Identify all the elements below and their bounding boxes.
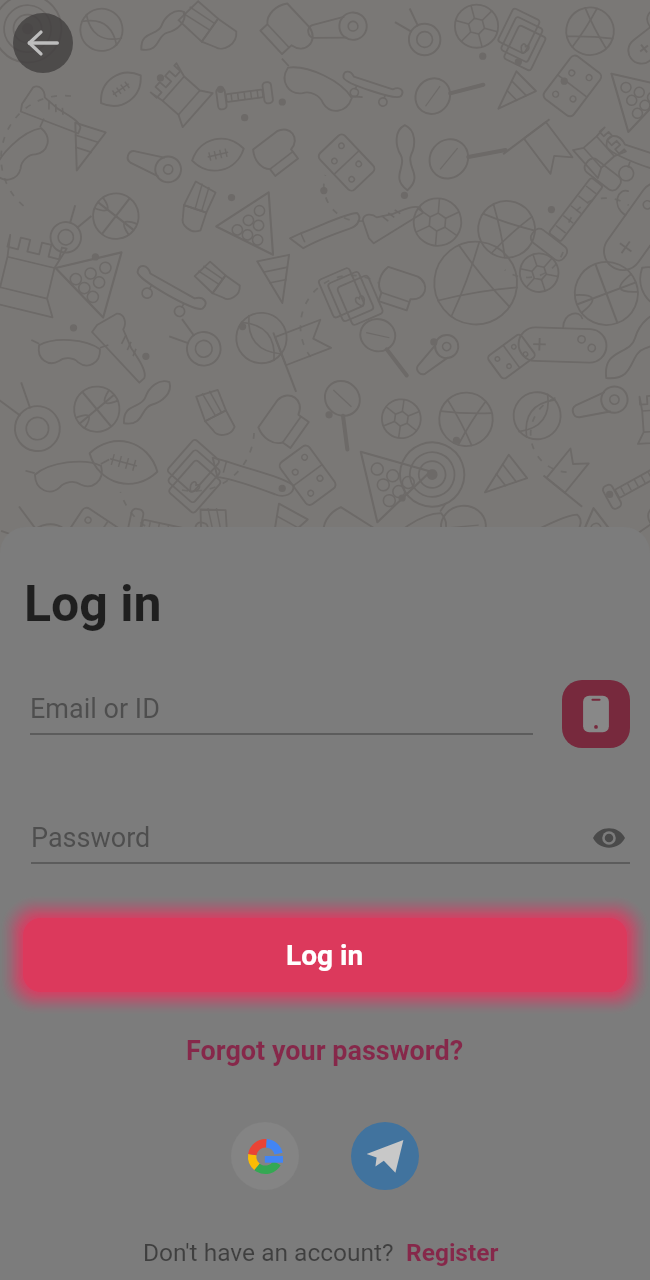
- button[interactable]: Forgot your password?: [176, 1029, 474, 1073]
- button[interactable]: Register: [406, 1238, 499, 1267]
- staticText: Email or ID: [30, 693, 160, 725]
- button[interactable]: Sign in with Google: [231, 1122, 299, 1190]
- staticText: Log in: [286, 939, 364, 972]
- button[interactable]: Back: [13, 13, 73, 73]
- staticText: Log in: [24, 575, 162, 634]
- button[interactable]: Show password: [588, 817, 630, 859]
- staticText: Password: [31, 822, 588, 854]
- button[interactable]: Sign in with Telegram: [351, 1122, 419, 1190]
- button[interactable]: Phone login: [562, 680, 630, 748]
- staticText: Don't have an account?: [143, 1238, 394, 1267]
- button[interactable]: Log in: [23, 918, 627, 992]
